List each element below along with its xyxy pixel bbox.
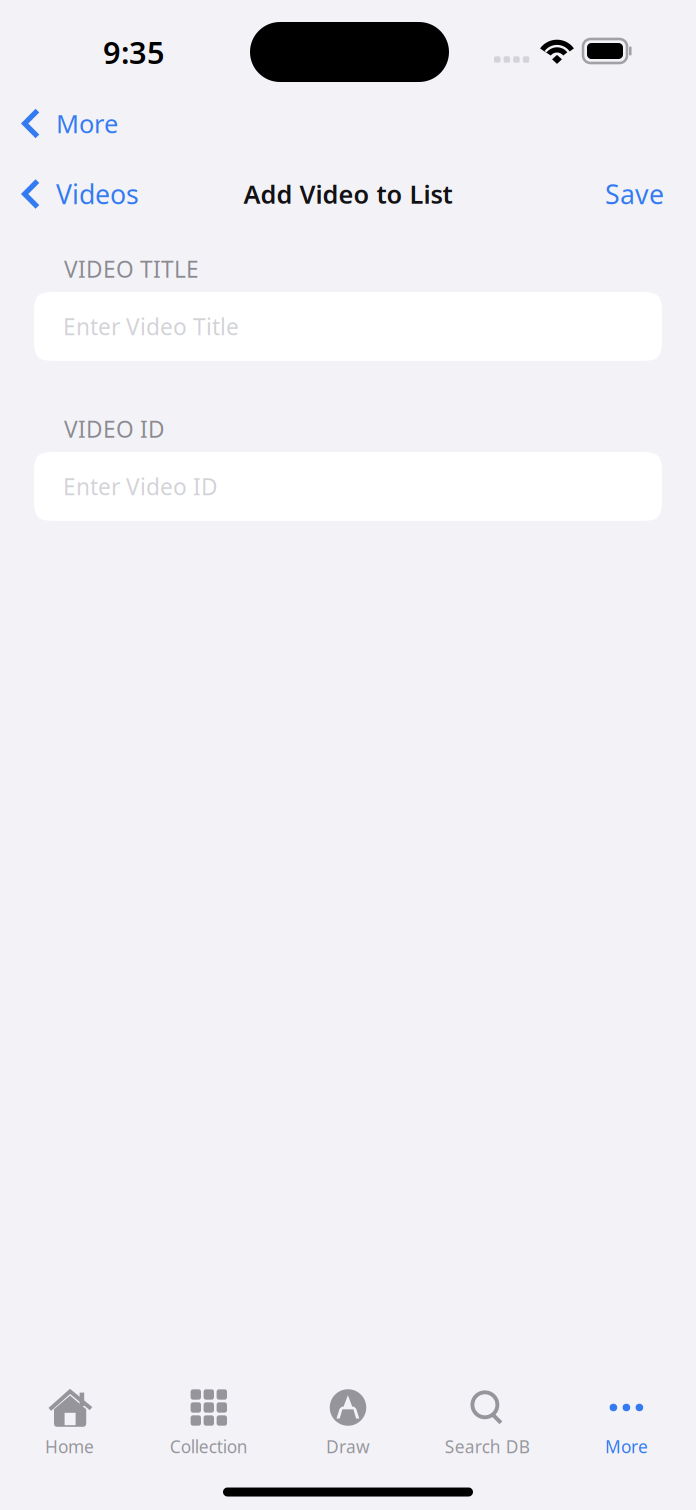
staticText: More — [605, 1435, 648, 1458]
button[interactable]: Search DB — [418, 1354, 557, 1474]
staticText: VIDEO ID — [64, 414, 165, 444]
button[interactable]: More — [557, 1354, 696, 1474]
button[interactable]: More — [0, 96, 132, 151]
staticText: Add Video to List — [243, 177, 452, 211]
staticText: More — [56, 107, 118, 140]
staticText: Home — [45, 1435, 94, 1458]
button[interactable]: Draw — [278, 1354, 418, 1474]
staticText: Search DB — [445, 1435, 530, 1458]
staticText: Collection — [170, 1435, 248, 1458]
staticText: Enter Video ID — [63, 471, 218, 501]
button[interactable]: Collection — [139, 1354, 278, 1474]
button[interactable]: Save — [591, 151, 696, 237]
staticText: Enter Video Title — [63, 311, 239, 341]
staticText: 9:35 — [103, 32, 165, 72]
button[interactable]: Videos — [0, 151, 153, 237]
button[interactable]: Home — [0, 1354, 139, 1474]
staticText: Draw — [326, 1435, 370, 1458]
staticText: Videos — [56, 176, 139, 212]
button[interactable]: Enter Video ID — [34, 452, 662, 521]
staticText: VIDEO TITLE — [64, 254, 199, 284]
staticText: Save — [605, 176, 664, 212]
button[interactable]: Enter Video Title — [34, 292, 662, 361]
